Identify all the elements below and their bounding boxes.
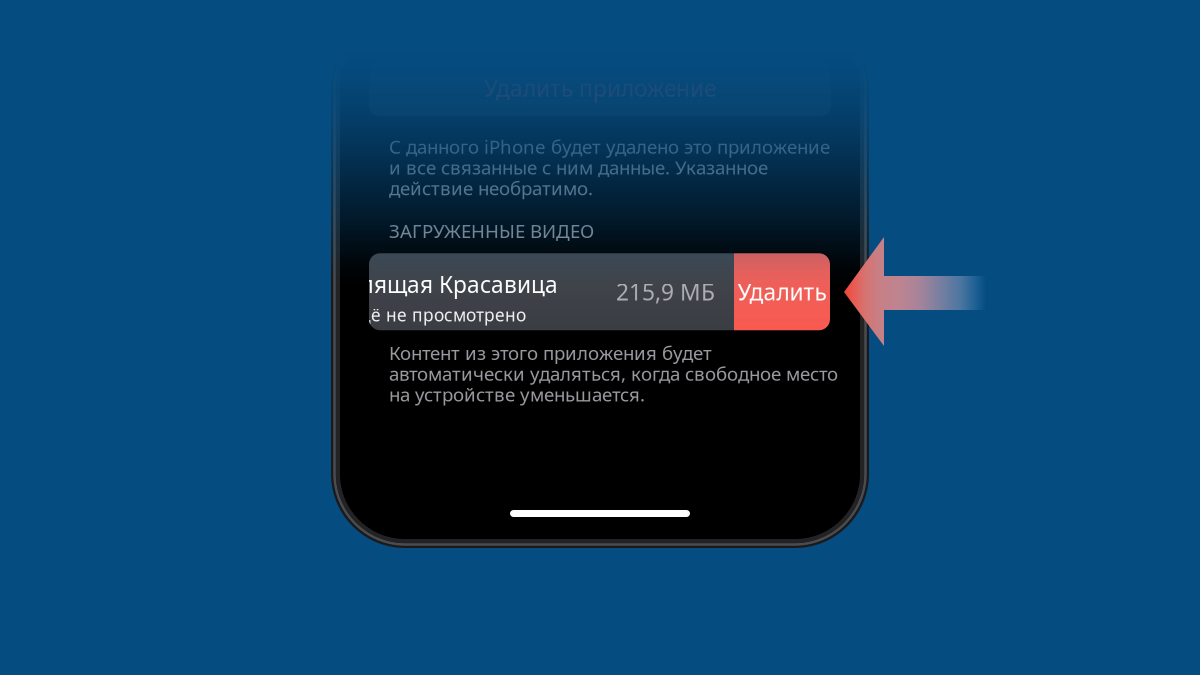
staticText: Контент из этого приложения будет автома…: [389, 340, 838, 407]
staticText: Спящая Красавица: [345, 269, 558, 299]
staticText: Удалить: [737, 277, 826, 307]
staticText: Ещё не просмотрено: [345, 303, 526, 326]
button[interactable]: Удалить приложение: [369, 60, 831, 116]
button[interactable]: Удалить: [734, 253, 830, 330]
button[interactable]: Указатель на кнопку «Удалить»: [844, 237, 986, 346]
staticText: С данного iPhone будет удалено это прило…: [389, 134, 830, 200]
staticText: 215,9 МБ: [616, 277, 715, 307]
staticText: Удалить приложение: [484, 73, 716, 103]
staticText: ЗАГРУЖЕННЫЕ ВИДЕО: [389, 218, 594, 243]
